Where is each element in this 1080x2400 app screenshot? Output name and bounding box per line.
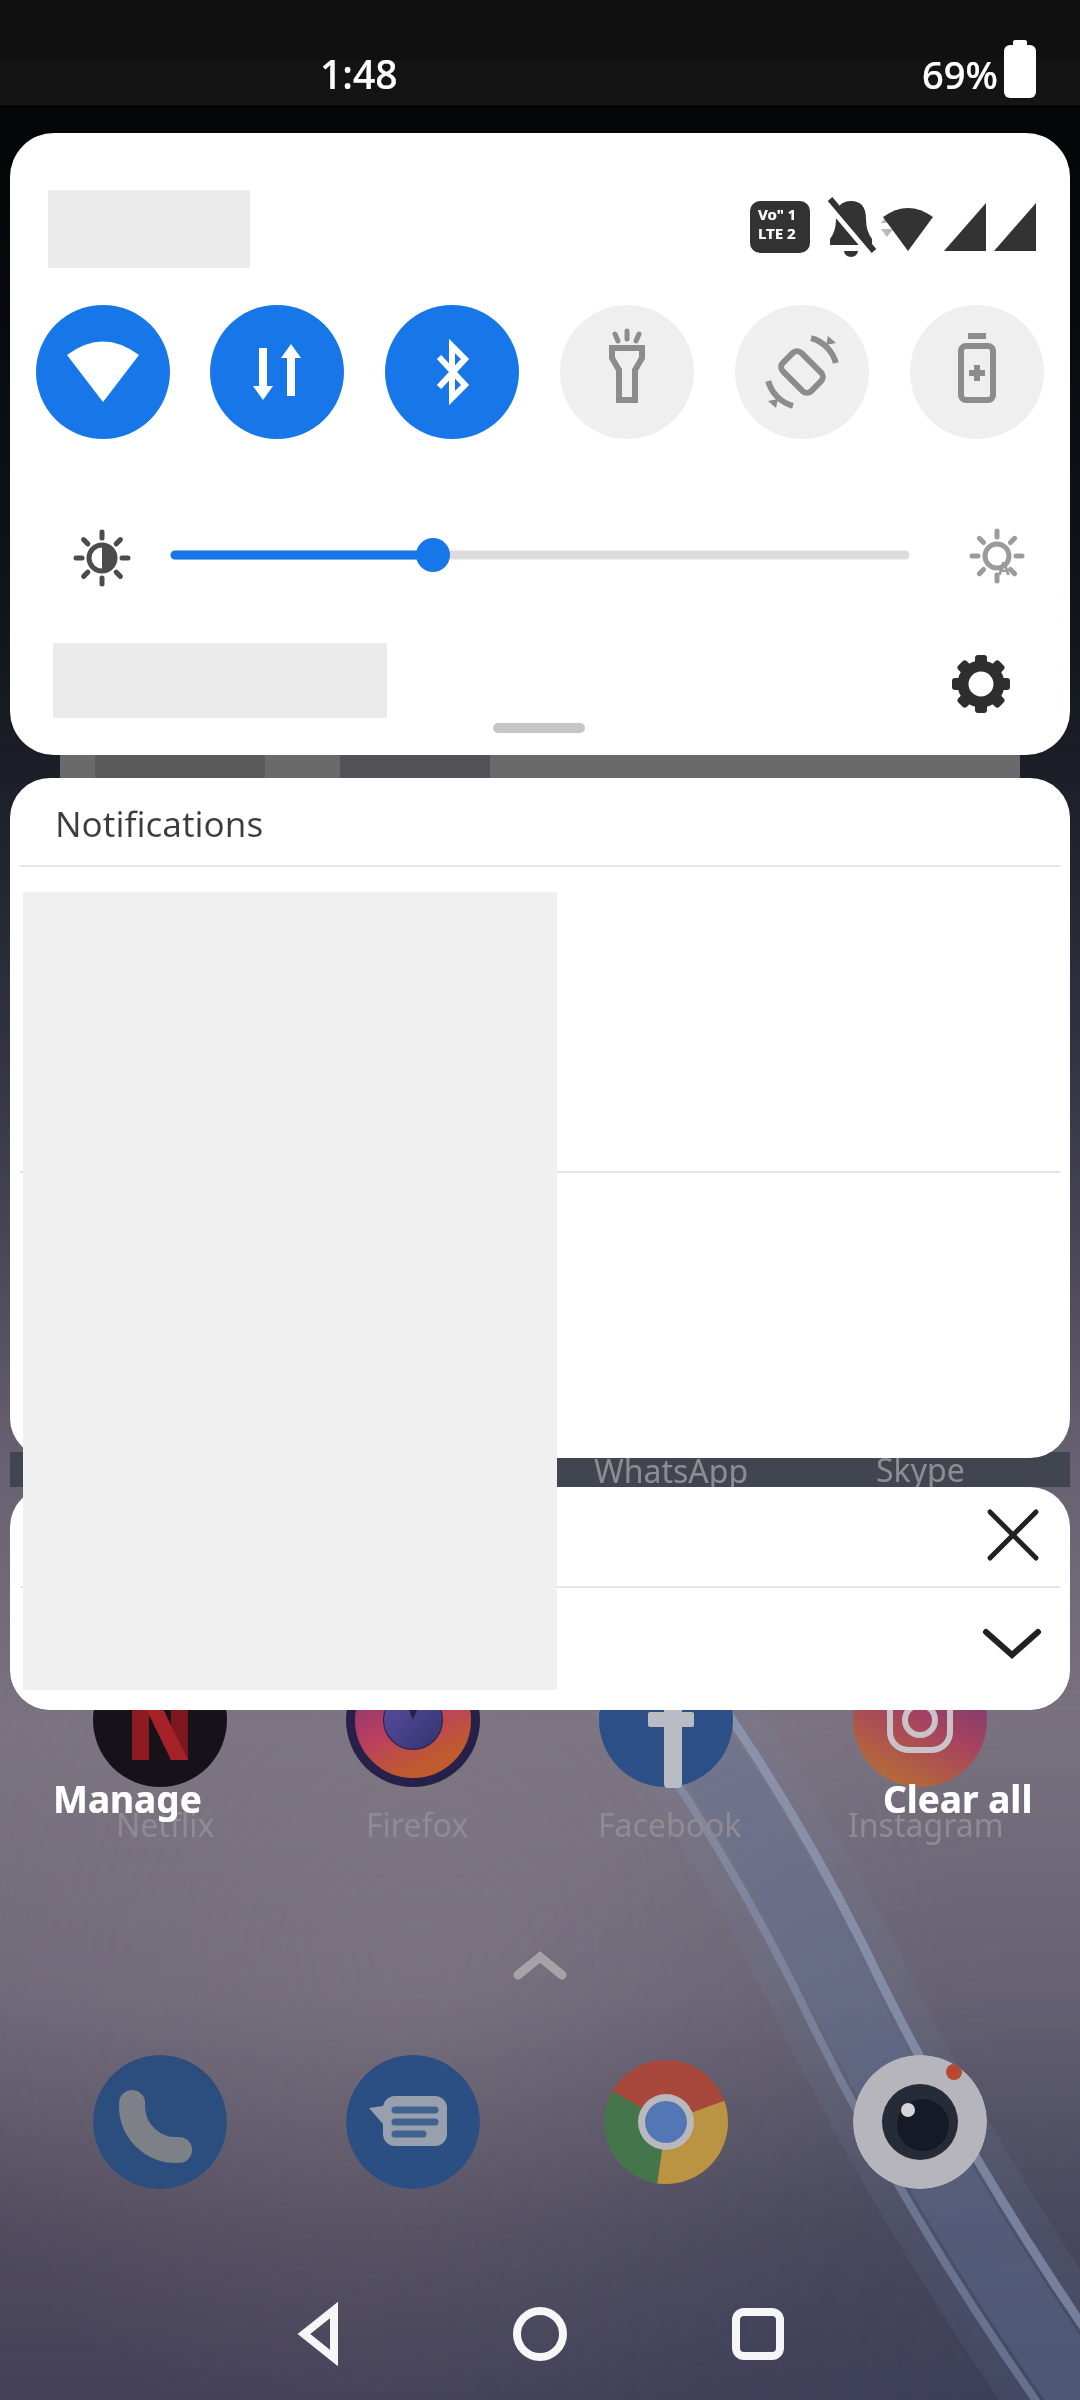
button[interactable]: Manage xyxy=(33,1760,222,1836)
staticText: 69% xyxy=(922,48,998,100)
button[interactable] xyxy=(560,305,694,439)
button[interactable] xyxy=(385,305,519,439)
staticText: WhatsApp xyxy=(594,1449,749,1493)
button[interactable] xyxy=(165,528,935,582)
button[interactable] xyxy=(972,1611,1052,1691)
button[interactable] xyxy=(945,648,1017,720)
button[interactable] xyxy=(500,2294,580,2374)
staticText: Clear all xyxy=(883,1773,1033,1823)
button[interactable] xyxy=(93,2055,227,2189)
button[interactable]: Notifications xyxy=(10,778,1070,866)
staticText: Skype xyxy=(876,1448,965,1492)
button[interactable] xyxy=(346,2055,480,2189)
staticText: Vo" 1 xyxy=(758,204,797,224)
staticText: Instagram xyxy=(848,1803,1004,1847)
button[interactable] xyxy=(36,305,170,439)
button[interactable] xyxy=(973,1495,1053,1575)
button[interactable] xyxy=(910,305,1044,439)
staticText: Manage xyxy=(53,1773,202,1823)
button[interactable]: Clear all xyxy=(863,1760,1053,1836)
staticText: A xyxy=(998,557,1010,580)
staticText: LTE 2 xyxy=(758,223,796,243)
staticText: Notifications xyxy=(55,800,264,848)
staticText: 1:48 xyxy=(320,47,398,100)
button[interactable] xyxy=(735,305,869,439)
staticText: Netflix xyxy=(116,1803,215,1847)
button[interactable] xyxy=(853,2055,987,2189)
button[interactable] xyxy=(599,2055,733,2189)
staticText: Facebook xyxy=(598,1803,742,1847)
button[interactable] xyxy=(210,305,344,439)
staticText: Firefox xyxy=(366,1803,469,1847)
button[interactable] xyxy=(282,2294,362,2374)
button[interactable] xyxy=(718,2294,798,2374)
